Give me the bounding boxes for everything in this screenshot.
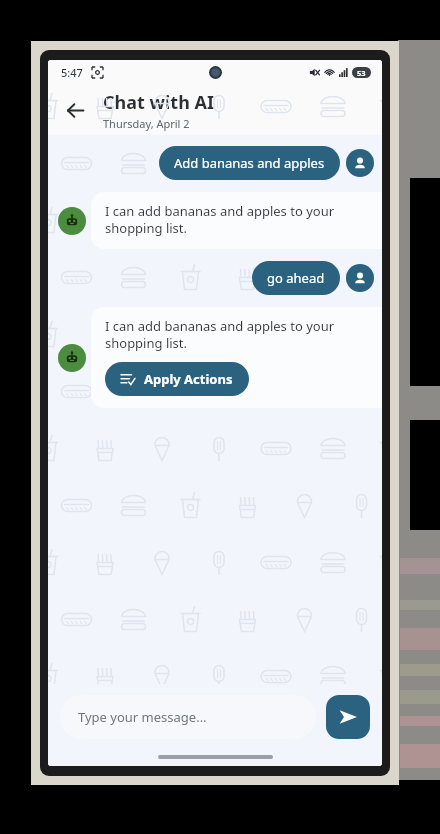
staticText: go ahead — [267, 269, 325, 287]
staticText: I can add bananas and apples to your sho… — [105, 202, 370, 237]
staticText: Thursday, April 2 — [103, 116, 190, 131]
staticText: Add bananas and apples — [174, 154, 325, 172]
staticText: Type your message... — [78, 708, 207, 726]
staticText: I can add bananas and apples to your sho… — [105, 317, 370, 352]
other: Assistant avatar — [58, 207, 86, 235]
button[interactable]: Add bananas and apples — [159, 146, 340, 180]
staticText: 5:47 — [61, 65, 83, 80]
staticText: Apply Actions — [144, 370, 233, 388]
button[interactable]: I can add bananas and apples to your sho… — [91, 192, 382, 249]
staticText: 53 — [357, 68, 366, 78]
button[interactable]: Type your message... — [60, 695, 316, 739]
other: User avatar — [346, 149, 374, 177]
other: Assistant avatar — [58, 344, 86, 372]
button[interactable]: I can add bananas and apples to your sho… — [91, 307, 382, 408]
button[interactable]: Apply Actions — [105, 362, 249, 396]
button[interactable]: Send — [326, 695, 370, 739]
button[interactable]: Back — [56, 91, 94, 129]
other: User avatar — [346, 264, 374, 292]
staticText: Chat with AI — [103, 90, 214, 115]
button[interactable]: go ahead — [252, 261, 340, 295]
